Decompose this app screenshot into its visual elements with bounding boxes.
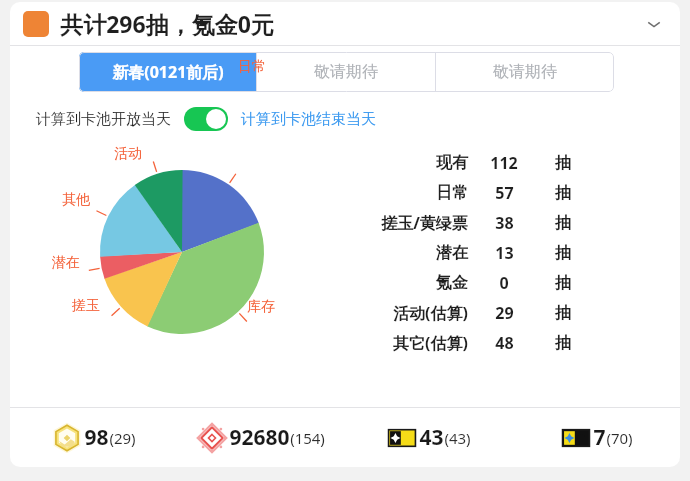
staticText: 氪金 (436, 273, 468, 293)
staticText: 搓玉 (72, 297, 100, 315)
other: Resource icon (196, 422, 228, 454)
staticText: 潜在 (436, 243, 468, 263)
button[interactable]: Expand (634, 4, 674, 44)
staticText: 29 (495, 302, 514, 324)
staticText: 抽 (555, 243, 571, 263)
staticText: 敬请期待 (493, 62, 557, 82)
staticText: 48 (495, 332, 514, 354)
button[interactable]: 敬请期待 (257, 52, 435, 92)
staticText: 98 (84, 423, 109, 452)
staticText: 计算到卡池结束当天 (241, 110, 376, 129)
staticText: 活动(估算) (393, 302, 468, 324)
staticText: 共计296抽，氪金0元 (60, 8, 274, 39)
button[interactable]: Resource icon (344, 408, 512, 467)
button[interactable]: Resource icon (10, 408, 177, 467)
staticText: 敬请期待 (314, 62, 378, 82)
staticText: 搓玉/黄绿票 (381, 212, 468, 234)
staticText: (154) (290, 428, 325, 448)
staticText: (70) (606, 428, 633, 448)
staticText: 抽 (555, 153, 571, 173)
staticText: 新春(0121前后) (112, 61, 224, 83)
staticText: 潜在 (52, 254, 80, 272)
button[interactable]: 敬请期待 (436, 52, 614, 92)
other: Resource icon (51, 422, 83, 454)
staticText: 活动 (114, 145, 142, 163)
button[interactable]: Resource icon (177, 408, 344, 467)
staticText: 112 (490, 152, 518, 174)
button[interactable]: Toggle calculation mode (184, 107, 228, 131)
staticText: 92680 (229, 423, 290, 452)
staticText: (29) (109, 428, 136, 448)
staticText: 7 (593, 423, 606, 452)
staticText: 抽 (555, 333, 571, 353)
staticText: 其他 (62, 191, 90, 209)
staticText: 抽 (555, 213, 571, 233)
staticText: 0 (499, 272, 509, 294)
button[interactable]: 共计296抽，氪金0元 (10, 2, 680, 45)
staticText: 其它(估算) (393, 332, 468, 354)
staticText: 计算到卡池开放当天 (36, 110, 171, 129)
staticText: 日常 (436, 183, 468, 203)
staticText: 43 (419, 423, 444, 452)
staticText: (43) (444, 428, 471, 448)
staticText: 库存 (247, 298, 275, 316)
staticText: 13 (495, 242, 514, 264)
staticText: 现有 (436, 153, 468, 173)
staticText: 抽 (555, 303, 571, 323)
other: Resource icon (386, 422, 418, 454)
other: Resource icon (560, 422, 592, 454)
staticText: 38 (495, 212, 514, 234)
button[interactable]: 新春(0121前后) (79, 52, 256, 92)
staticText: 日常 (238, 58, 266, 76)
button[interactable]: Resource icon (512, 408, 680, 467)
staticText: 57 (495, 182, 514, 204)
staticText: 抽 (555, 273, 571, 293)
staticText: 抽 (555, 183, 571, 203)
